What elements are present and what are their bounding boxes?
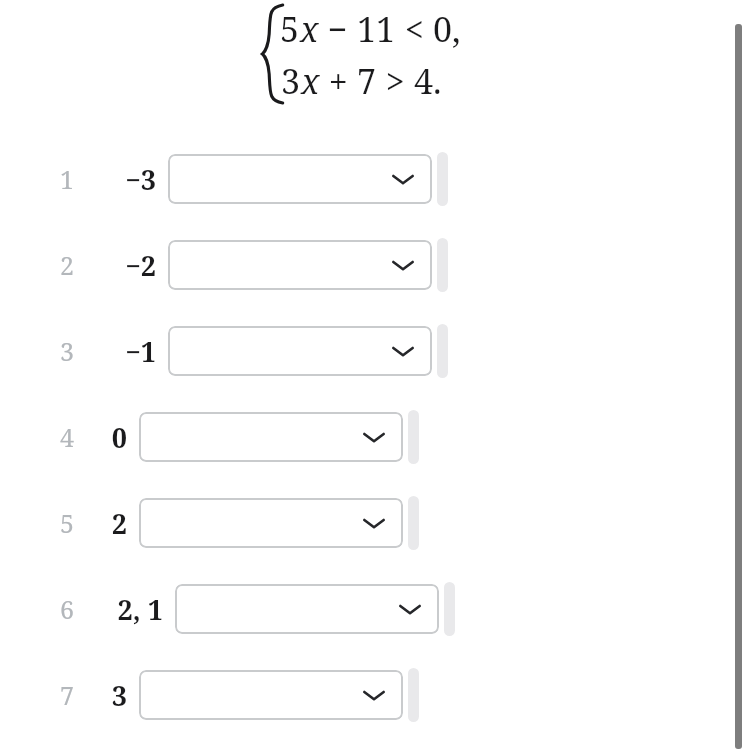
staticText: x	[300, 6, 319, 52]
button[interactable]: Select answer for 0	[139, 412, 403, 462]
staticText: 2	[60, 248, 74, 282]
button[interactable]: Select answer for 2, 1	[175, 584, 439, 634]
staticText: 4.	[414, 58, 442, 104]
staticText: x	[301, 58, 320, 104]
button[interactable]: Select answer for −3	[168, 154, 432, 204]
staticText: +	[320, 58, 357, 104]
button[interactable]: Select answer for −2	[168, 240, 432, 290]
staticText: −3	[125, 161, 156, 198]
staticText: 2	[111, 505, 127, 542]
staticText: 3	[281, 58, 301, 104]
staticText: 7	[357, 58, 377, 104]
staticText: −	[319, 6, 357, 52]
staticText: −2	[125, 247, 156, 284]
staticText: 2, 1	[117, 591, 163, 628]
button[interactable]: Select answer for 2	[139, 498, 403, 548]
staticText: 5	[280, 6, 300, 52]
staticText: 11	[357, 6, 396, 52]
staticText: 4	[60, 420, 74, 454]
staticText: 0	[111, 419, 127, 456]
staticText: 3	[111, 677, 127, 714]
staticText: >	[377, 58, 414, 104]
button[interactable]: Select answer for 3	[139, 670, 403, 720]
staticText: −1	[125, 333, 156, 370]
staticText: 3	[60, 334, 74, 368]
staticText: 6	[60, 592, 74, 626]
staticText: 1	[60, 162, 74, 196]
button[interactable]: Select answer for −1	[168, 326, 432, 376]
staticText: <	[396, 6, 433, 52]
staticText: 0,	[433, 6, 461, 52]
staticText: 5	[60, 506, 74, 540]
staticText: 7	[60, 678, 74, 712]
